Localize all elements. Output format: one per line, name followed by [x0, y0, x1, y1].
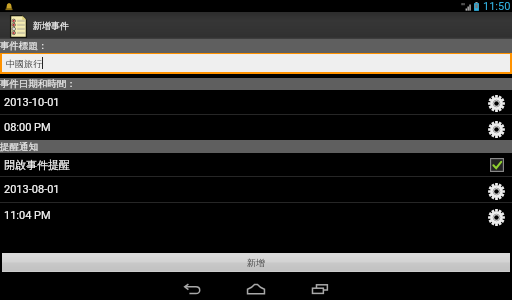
- button[interactable]: 2013-08-01: [0, 177, 512, 202]
- button[interactable]: Home: [242, 272, 270, 300]
- staticText: 提醒通知: [0, 141, 38, 153]
- button[interactable]: 事件日期和時間：: [0, 78, 512, 90]
- staticText: 事件標題：: [0, 40, 48, 52]
- button[interactable]: Settings: [487, 120, 505, 138]
- button[interactable]: Settings: [487, 182, 505, 200]
- button[interactable]: 開啟事件提醒: [0, 153, 512, 176]
- staticText: 開啟事件提醒: [4, 158, 70, 172]
- button[interactable]: Enable reminder: [489, 157, 504, 172]
- staticText: 新增: [247, 257, 265, 268]
- button[interactable]: 提醒通知: [0, 140, 512, 153]
- button[interactable]: 中國旅行: [2, 54, 510, 72]
- button[interactable]: Settings: [487, 208, 505, 226]
- button[interactable]: Back: [178, 272, 206, 300]
- button[interactable]: 08:00 PM: [0, 115, 512, 140]
- button[interactable]: 2013-10-01: [0, 90, 512, 114]
- staticText: 事件日期和時間：: [0, 78, 76, 90]
- button[interactable]: 新增: [2, 253, 510, 272]
- staticText: 新增事件: [33, 20, 69, 31]
- button[interactable]: 事件標題：: [0, 39, 512, 53]
- button[interactable]: Settings: [487, 94, 505, 112]
- button[interactable]: Recent apps: [306, 272, 334, 300]
- button[interactable]: 新增事件: [0, 12, 512, 39]
- staticText: 2013-08-01: [4, 183, 60, 196]
- staticText: 11:04 PM: [4, 209, 51, 222]
- staticText: 11:50: [483, 0, 511, 12]
- staticText: 中國旅行: [6, 58, 42, 69]
- button[interactable]: 11:04 PM: [0, 203, 512, 228]
- staticText: 2013-10-01: [4, 96, 60, 109]
- staticText: 08:00 PM: [4, 121, 51, 134]
